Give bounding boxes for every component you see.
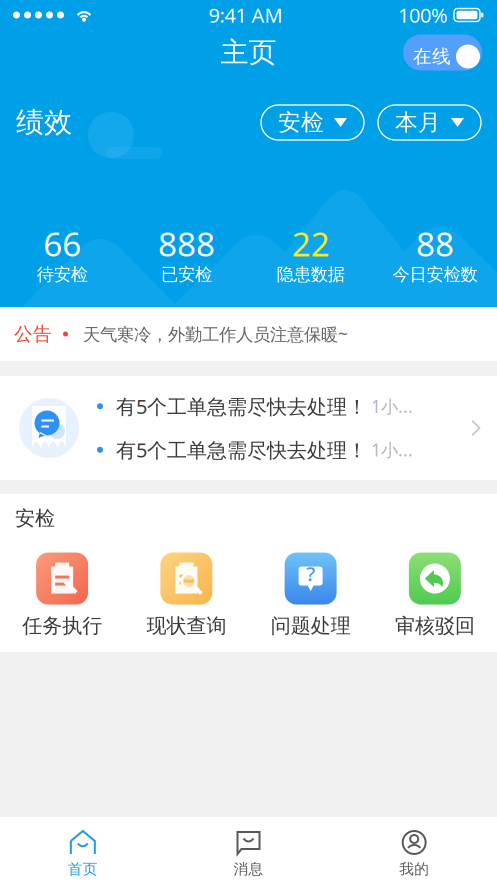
staticText: 天气寒冷，外勤工作人员注意保暖~	[83, 322, 348, 345]
button[interactable]: 现状查询	[124, 553, 248, 638]
staticText: 现状查询	[146, 614, 226, 638]
staticText: 66	[43, 221, 81, 266]
staticText: 首页	[68, 860, 98, 878]
staticText: 审核驳回	[395, 614, 475, 638]
staticText: 今日安检数	[392, 264, 477, 285]
staticText: 888	[158, 221, 215, 266]
staticText: 本月	[395, 109, 441, 136]
staticText: 22	[292, 221, 330, 266]
button[interactable]: 本月	[378, 105, 481, 140]
button[interactable]: 有5个工单急需尽快去处理！	[0, 376, 497, 480]
button[interactable]: 任务执行	[0, 553, 124, 638]
staticText: 主页	[220, 35, 276, 70]
staticText: 消息	[233, 860, 263, 878]
button[interactable]: ?	[248, 553, 373, 638]
staticText: 在线	[413, 45, 451, 68]
staticText: 88	[416, 221, 454, 266]
staticText: 任务执行	[22, 614, 102, 638]
staticText: 1小时前	[371, 395, 429, 418]
staticText: 公告	[14, 322, 52, 345]
staticText: 1小时前	[371, 438, 429, 461]
staticText: 我的	[399, 860, 429, 878]
staticText: 9:41 AM	[208, 2, 282, 28]
button[interactable]: 安检	[261, 105, 364, 140]
staticText: 待安检	[37, 264, 88, 285]
staticText: 有5个工单急需尽快去处理！	[116, 393, 367, 419]
staticText: 隐患数据	[277, 264, 345, 285]
button[interactable]: 审核驳回	[373, 553, 497, 638]
button[interactable]: 消息	[166, 829, 331, 878]
staticText: 有5个工单急需尽快去处理！	[116, 436, 367, 463]
button[interactable]: 在线	[403, 34, 482, 70]
button[interactable]: 我的	[331, 829, 497, 878]
staticText: 安检	[15, 506, 55, 531]
staticText: 100%	[398, 2, 448, 28]
button[interactable]: 首页	[0, 829, 166, 878]
staticText: ?	[306, 560, 315, 587]
button[interactable]: 公告	[0, 307, 497, 361]
staticText: 问题处理	[271, 614, 351, 638]
staticText: 绩效	[16, 105, 72, 140]
staticText: 安检	[278, 109, 324, 136]
staticText: 已安检	[161, 264, 212, 285]
